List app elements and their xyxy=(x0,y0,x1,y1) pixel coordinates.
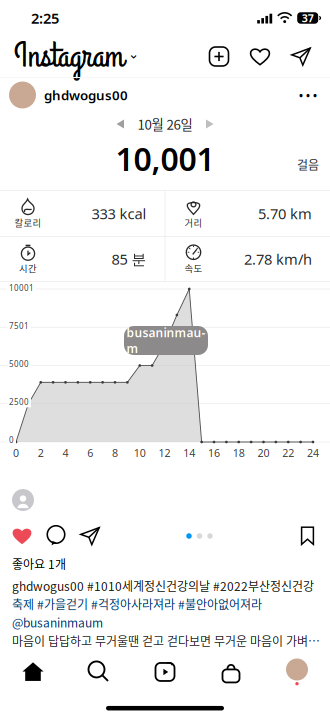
staticText: 좋아요 1개 xyxy=(12,555,66,572)
staticText: 14 xyxy=(183,446,195,460)
staticText: 10,001 xyxy=(115,137,214,180)
button[interactable]: Instagram xyxy=(14,33,139,80)
staticText: 12 xyxy=(158,446,170,460)
button[interactable]: Next day xyxy=(192,112,226,136)
staticText: 85 분 xyxy=(111,249,146,269)
staticText: 22 xyxy=(282,446,294,460)
button[interactable]: Previous day xyxy=(103,112,137,136)
staticText: 6 xyxy=(87,446,93,460)
button[interactable]: Activity xyxy=(249,45,271,67)
button[interactable]: Profile xyxy=(264,650,330,694)
staticText: Instagram xyxy=(14,33,124,80)
staticText: 0 xyxy=(13,446,19,460)
staticText: 7501 xyxy=(9,321,29,331)
staticText: 속도 xyxy=(184,261,202,275)
staticText: 10월 26일 xyxy=(137,114,192,134)
staticText: 마음이 답답하고 무거울땐 걷고 걷다보면 무거운 마음이 가벼워지 xyxy=(12,632,326,649)
staticText: 10001 xyxy=(9,283,34,293)
staticText: 칼로리 xyxy=(14,216,41,229)
staticText: 2500 xyxy=(9,397,29,407)
button[interactable]: Comment xyxy=(45,525,67,547)
staticText: 4 xyxy=(62,446,68,460)
button[interactable]: New post xyxy=(208,45,230,67)
staticText: 축제 #가을걷기 #걱정아사라져라 #불안아없어져라 xyxy=(12,595,262,613)
staticText: 333 kcal xyxy=(91,204,146,223)
staticText: ⌄ xyxy=(128,46,139,61)
button[interactable]: Share xyxy=(79,525,101,547)
button[interactable]: Messages xyxy=(290,45,312,67)
staticText: 0 xyxy=(9,435,14,445)
staticText: 24 xyxy=(307,446,319,460)
staticText: 37 xyxy=(302,11,314,25)
staticText: 8 xyxy=(112,446,118,460)
staticText: 걸음 xyxy=(297,156,319,173)
staticText: 20 xyxy=(257,446,269,460)
staticText: 시간 xyxy=(19,261,37,275)
staticText: 16 xyxy=(208,446,220,460)
staticText: 2 xyxy=(38,446,44,460)
button[interactable]: Reels xyxy=(132,650,198,694)
button[interactable]: Unlike xyxy=(11,525,33,547)
button[interactable]: Shop xyxy=(198,650,264,694)
staticText: 2:25 xyxy=(31,8,59,28)
button[interactable]: Search xyxy=(66,650,132,694)
button[interactable]: ghdwogus00 xyxy=(0,78,330,112)
staticText: 18 xyxy=(233,446,245,460)
button[interactable]: Save xyxy=(298,525,317,547)
staticText: busaninmaum xyxy=(126,325,205,356)
staticText: • • • xyxy=(299,88,317,102)
staticText: 5000 xyxy=(9,359,29,369)
staticText: @busaninmaum xyxy=(12,614,103,631)
staticText: 2.78 km/h xyxy=(244,249,312,269)
staticText: 10 xyxy=(134,446,146,460)
staticText: ghdwogus00 #1010세계정신건강의날 #2022부산정신건강 xyxy=(12,577,314,594)
staticText: ghdwogus00 xyxy=(44,86,128,104)
button[interactable]: Home xyxy=(0,650,66,694)
staticText: 거리 xyxy=(184,216,202,229)
staticText: 5.70 km xyxy=(258,204,312,223)
